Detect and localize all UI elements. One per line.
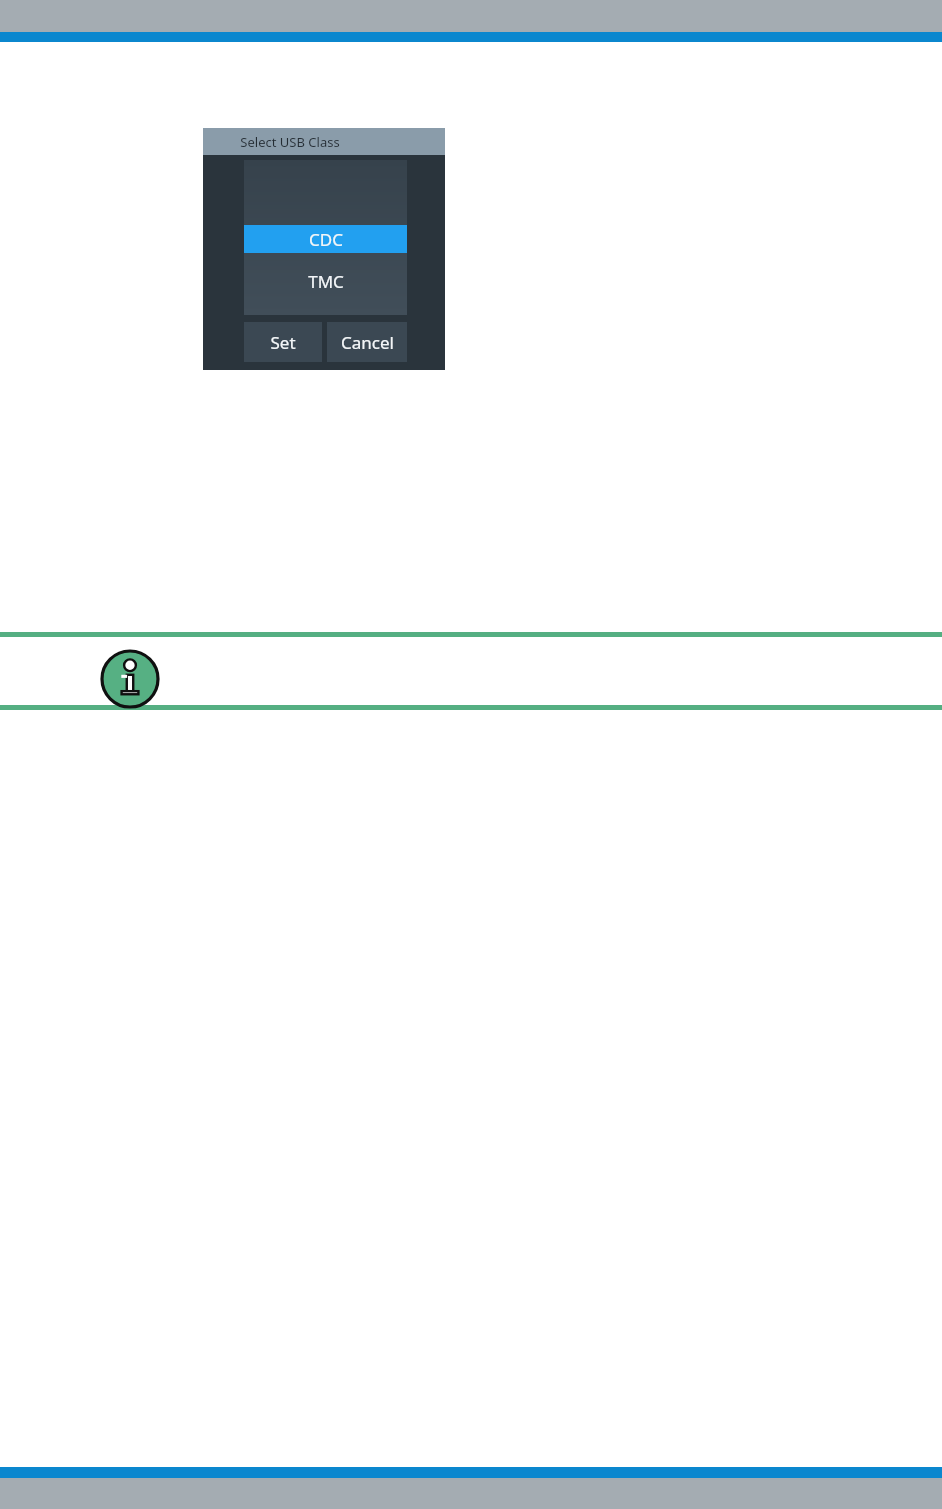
button[interactable]: Set bbox=[244, 322, 322, 362]
staticText: Set bbox=[270, 331, 296, 354]
staticText: Cancel bbox=[341, 331, 394, 354]
staticText: CDC bbox=[309, 228, 343, 251]
other: Information bbox=[100, 649, 160, 709]
button[interactable]: TMC bbox=[244, 253, 407, 309]
button[interactable]: Cancel bbox=[327, 322, 407, 362]
button[interactable]: CDC bbox=[244, 225, 407, 253]
staticText: TMC bbox=[308, 270, 344, 293]
staticText: Select USB Class bbox=[240, 133, 340, 151]
